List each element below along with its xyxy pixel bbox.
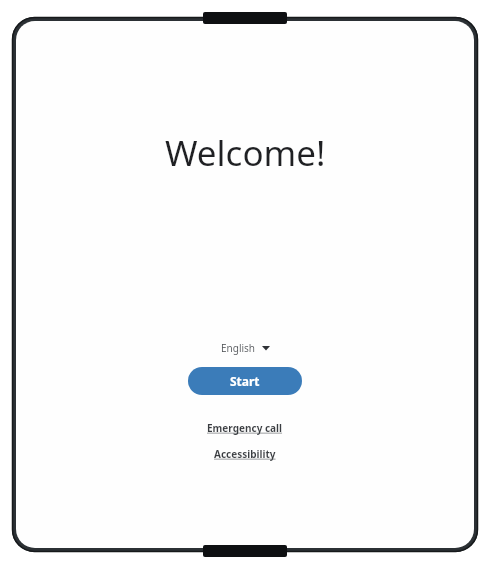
staticText: Start: [230, 373, 260, 389]
staticText: Accessibility: [214, 447, 276, 461]
button[interactable]: Emergency call: [201, 419, 289, 437]
staticText: English: [221, 341, 256, 355]
button[interactable]: English: [215, 338, 276, 358]
button[interactable]: Accessibility: [208, 445, 282, 463]
staticText: Emergency call: [207, 421, 283, 435]
button[interactable]: Start: [188, 367, 302, 395]
staticText: Welcome!: [165, 129, 326, 177]
